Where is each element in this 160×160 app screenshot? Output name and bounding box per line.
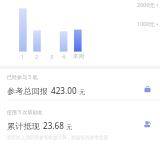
staticText: 使用 5 次鼓励金 [7,109,43,116]
other: 累计抵现详情 [144,121,151,128]
staticText: 表示以上为区间参考收益计算，数据仅供参考使用 [7,135,109,141]
staticText: 本周 [73,53,84,60]
other: 参考总回报详情 [144,86,151,93]
staticText: 累计抵现 [7,121,40,131]
staticText: 已经参与 5 笔 [7,74,38,81]
staticText: 1000元 [137,20,156,28]
button[interactable]: 使用 5 次鼓励金 [0,108,160,132]
staticText: 1 [21,53,25,60]
staticText: 423.00 [51,85,77,96]
staticText: 3 [50,53,54,60]
staticText: 2 [35,53,39,60]
staticText: 参考总回报 [7,86,48,96]
staticText: 23.68 [43,120,64,131]
staticText: 元 [66,123,72,131]
button[interactable]: 已经参与 5 笔 [0,73,160,97]
staticText: 4 [62,53,66,60]
staticText: 元 [79,88,85,96]
staticText: 2000元 [137,1,156,9]
